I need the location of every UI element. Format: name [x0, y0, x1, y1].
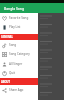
button[interactable]: All Singer	[0, 59, 38, 69]
staticText: Bangla Song	[4, 6, 25, 11]
staticText: All Singer	[9, 62, 23, 66]
staticText: GENERAL	[1, 35, 13, 39]
button[interactable]: Song	[0, 40, 38, 50]
staticText: Play List	[9, 25, 21, 29]
button[interactable]: Bangla Song	[0, 3, 64, 13]
staticText: Quit	[9, 71, 16, 75]
button[interactable]: Favorite Song	[0, 14, 38, 22]
button[interactable]: Play List	[0, 23, 38, 31]
staticText: Song	[9, 43, 17, 47]
staticText: Song Category	[9, 52, 30, 56]
button[interactable]: Song Category	[0, 49, 38, 59]
button[interactable]: Quit	[0, 68, 38, 78]
staticText: ABOUT	[1, 80, 11, 84]
staticText: Favorite Song	[9, 16, 29, 20]
staticText: Share App	[9, 88, 24, 92]
button[interactable]: Share App	[0, 85, 38, 95]
